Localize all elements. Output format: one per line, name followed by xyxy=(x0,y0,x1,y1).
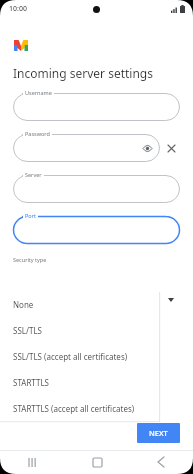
staticText: 10:00 xyxy=(9,4,27,14)
staticText: Security type xyxy=(13,256,47,263)
button[interactable]: Home xyxy=(65,450,129,474)
staticText: STARTTLS xyxy=(13,377,50,388)
staticText: Incoming server settings xyxy=(13,65,153,81)
button[interactable]: Clear password xyxy=(165,142,178,155)
button[interactable]: SSL/TLS (accept all certificates) xyxy=(0,343,159,369)
button[interactable]: Back xyxy=(129,450,193,474)
staticText: Password xyxy=(25,130,50,137)
button[interactable]: Open security type menu xyxy=(164,293,177,306)
staticText: NEXT xyxy=(149,428,168,438)
button[interactable]: Password xyxy=(13,134,160,162)
staticText: SSL/TLS (accept all certificates) xyxy=(13,351,128,362)
button[interactable]: STARTTLS xyxy=(0,369,159,395)
button[interactable]: Port xyxy=(13,216,180,244)
button[interactable]: Recent apps xyxy=(0,450,65,474)
staticText: SSL/TLS xyxy=(13,325,42,336)
button[interactable]: Username xyxy=(13,93,180,121)
button[interactable]: Show password xyxy=(142,143,153,154)
button[interactable]: SSL/TLS xyxy=(0,317,159,343)
staticText: Server xyxy=(25,171,42,178)
button[interactable]: Server xyxy=(13,175,180,203)
button[interactable]: NEXT xyxy=(137,423,180,443)
staticText: Port xyxy=(25,212,36,219)
staticText: Username xyxy=(25,89,52,96)
staticText: STARTTLS (accept all certificates) xyxy=(13,403,135,414)
button[interactable]: None xyxy=(0,291,159,317)
button[interactable]: STARTTLS (accept all certificates) xyxy=(0,395,159,421)
staticText: None xyxy=(13,299,34,310)
